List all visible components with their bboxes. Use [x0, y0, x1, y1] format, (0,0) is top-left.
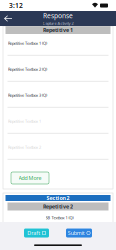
staticText: Capture Activity 2: [42, 21, 73, 26]
button[interactable]: Draft: [24, 228, 49, 237]
staticText: 3:12: [9, 1, 23, 10]
staticText: Response: [43, 11, 73, 20]
staticText: Add More: [18, 174, 41, 182]
button[interactable]: Add More: [11, 172, 49, 184]
staticText: Repetitive Textbox 2: [8, 144, 41, 150]
staticText: Repetitive Textbox 2 (Q): [8, 66, 47, 72]
staticText: Repetitive 2: [43, 203, 73, 210]
staticText: Repetitive Textbox 3 (Q): [8, 92, 47, 98]
staticText: Submit: [68, 229, 85, 237]
staticText: SB Textbox 1 (Q): [45, 215, 73, 220]
button[interactable]: Submit: [66, 228, 92, 237]
staticText: Section 2: [46, 194, 69, 202]
staticText: Repetitive Textbox 1: [8, 118, 41, 124]
staticText: Repetitive 1: [43, 26, 73, 34]
staticText: Draft: [27, 229, 40, 237]
staticText: Repetitive Textbox 1 (Q): [8, 40, 47, 46]
button[interactable]: Back: [0, 11, 16, 26]
